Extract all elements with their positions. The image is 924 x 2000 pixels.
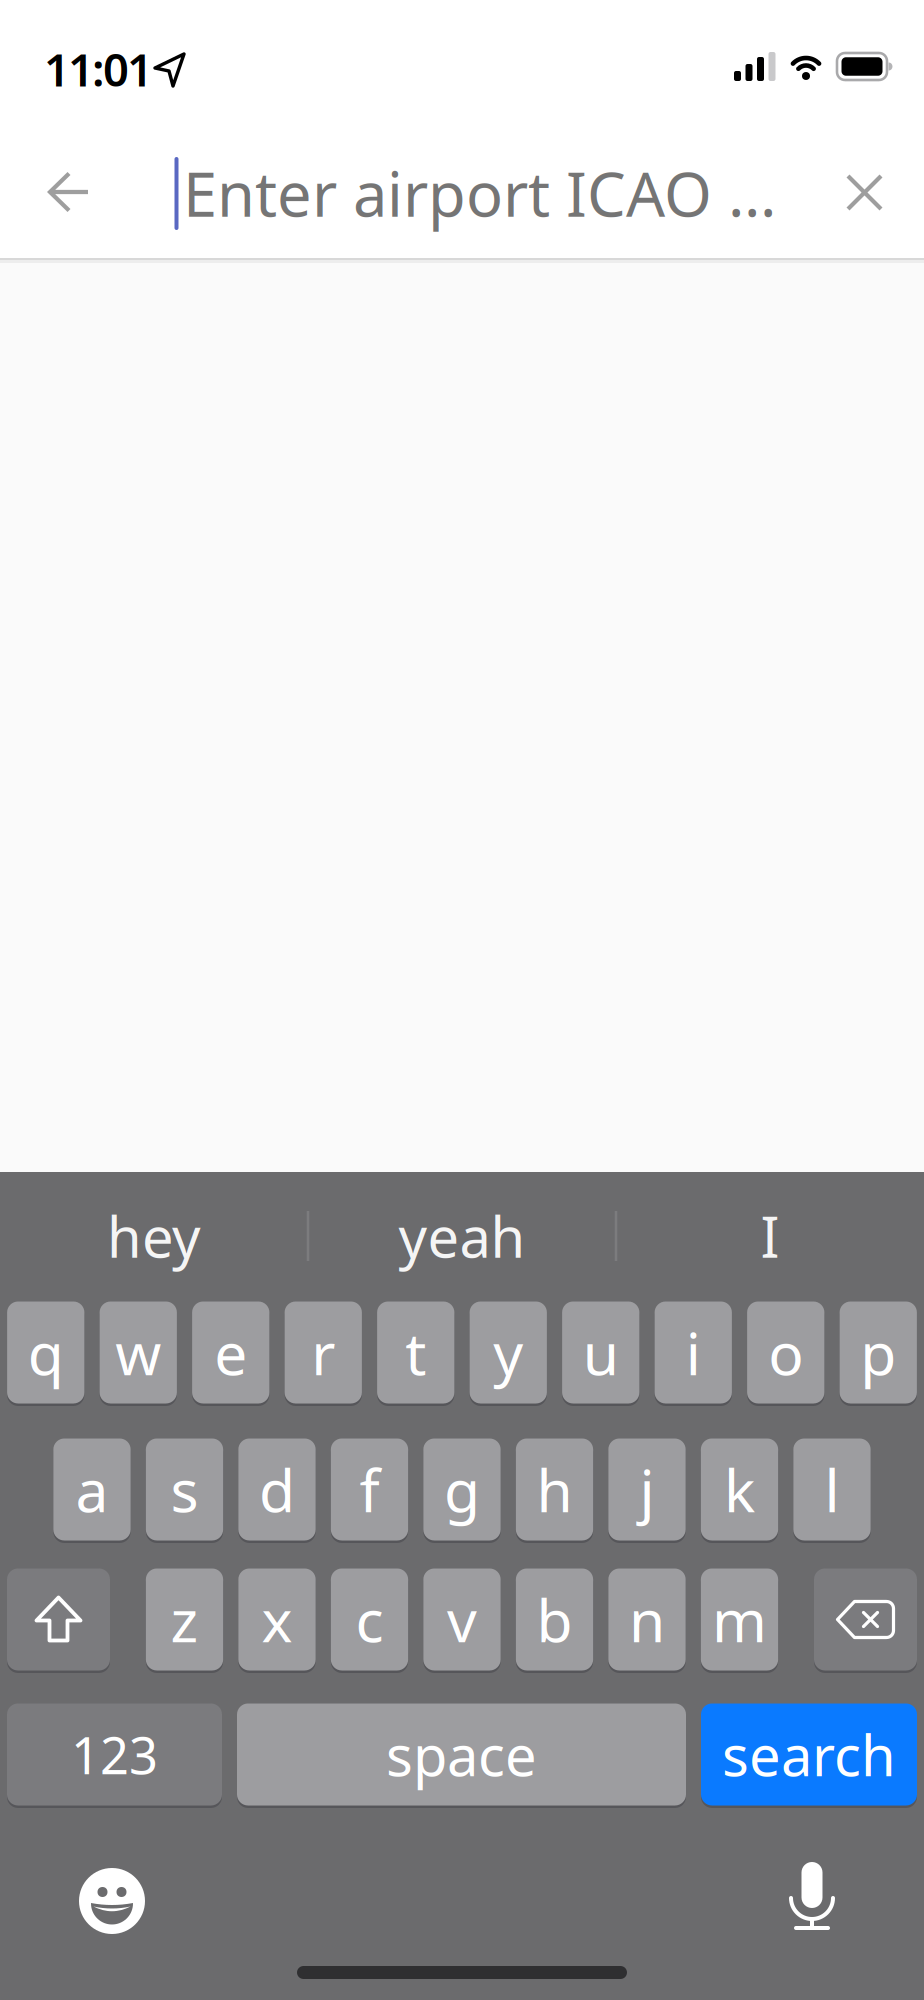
button[interactable]: hey — [4, 1191, 304, 1281]
button[interactable]: i — [655, 1300, 732, 1405]
staticText: s — [170, 1450, 198, 1528]
button[interactable]: yeah — [312, 1191, 612, 1281]
button[interactable] — [848, 176, 881, 209]
button[interactable] — [49, 173, 89, 211]
button[interactable]: l — [793, 1437, 871, 1542]
staticText: b — [536, 1580, 572, 1658]
button[interactable]: f — [331, 1437, 408, 1542]
button[interactable]: e — [192, 1300, 269, 1405]
staticText: x — [261, 1580, 292, 1658]
staticText: hey — [107, 1199, 201, 1273]
staticText: f — [359, 1450, 379, 1528]
button[interactable]: v — [423, 1567, 501, 1672]
button[interactable]: o — [747, 1300, 824, 1405]
button[interactable]: 123 — [7, 1702, 222, 1807]
staticText: i — [686, 1313, 701, 1391]
button[interactable]: search — [701, 1702, 917, 1807]
staticText: a — [75, 1450, 108, 1528]
button[interactable]: j — [608, 1437, 686, 1542]
staticText: j — [639, 1450, 654, 1528]
button[interactable] — [79, 1868, 145, 1934]
staticText: t — [405, 1313, 426, 1391]
staticText: p — [860, 1313, 896, 1391]
staticText: y — [493, 1313, 523, 1391]
button[interactable]: g — [423, 1437, 501, 1542]
staticText: z — [170, 1580, 198, 1658]
button[interactable]: d — [238, 1437, 316, 1542]
button[interactable]: x — [238, 1567, 316, 1672]
staticText: yeah — [398, 1199, 525, 1273]
staticText: v — [447, 1580, 477, 1658]
staticText: k — [724, 1450, 755, 1528]
button[interactable]: m — [701, 1567, 778, 1672]
button[interactable]: u — [562, 1300, 639, 1405]
button[interactable]: n — [608, 1567, 686, 1672]
button[interactable]: y — [470, 1300, 547, 1405]
staticText: q — [28, 1313, 64, 1391]
staticText: search — [722, 1717, 896, 1792]
button[interactable] — [814, 1567, 917, 1672]
staticText: r — [311, 1313, 335, 1391]
staticText: o — [768, 1313, 803, 1391]
staticText: g — [444, 1450, 480, 1528]
button[interactable]: c — [331, 1567, 408, 1672]
staticText: I — [760, 1199, 779, 1273]
button[interactable]: a — [53, 1437, 131, 1542]
staticText: 11:01 — [44, 39, 153, 99]
staticText: c — [355, 1580, 383, 1658]
button[interactable]: s — [146, 1437, 223, 1542]
staticText: l — [824, 1450, 839, 1528]
staticText: d — [259, 1450, 295, 1528]
button[interactable]: b — [516, 1567, 593, 1672]
button[interactable]: k — [701, 1437, 778, 1542]
staticText: 123 — [71, 1721, 158, 1788]
staticText: e — [214, 1313, 247, 1391]
button[interactable]: w — [100, 1300, 177, 1405]
staticText: space — [386, 1717, 537, 1792]
button[interactable]: p — [840, 1300, 917, 1405]
staticText: u — [583, 1313, 619, 1391]
staticText: w — [115, 1313, 161, 1391]
button[interactable]: space — [237, 1702, 686, 1807]
button[interactable]: r — [285, 1300, 362, 1405]
staticText: m — [712, 1580, 767, 1658]
button[interactable]: I — [620, 1191, 920, 1281]
button[interactable] — [787, 1862, 837, 1934]
button[interactable] — [7, 1567, 110, 1672]
button[interactable]: q — [7, 1300, 84, 1405]
button[interactable]: h — [516, 1437, 593, 1542]
button[interactable]: t — [377, 1300, 454, 1405]
staticText: n — [629, 1580, 665, 1658]
staticText: Enter airport ICAO ... — [183, 152, 776, 234]
button[interactable]: z — [146, 1567, 223, 1672]
staticText: h — [536, 1450, 572, 1528]
